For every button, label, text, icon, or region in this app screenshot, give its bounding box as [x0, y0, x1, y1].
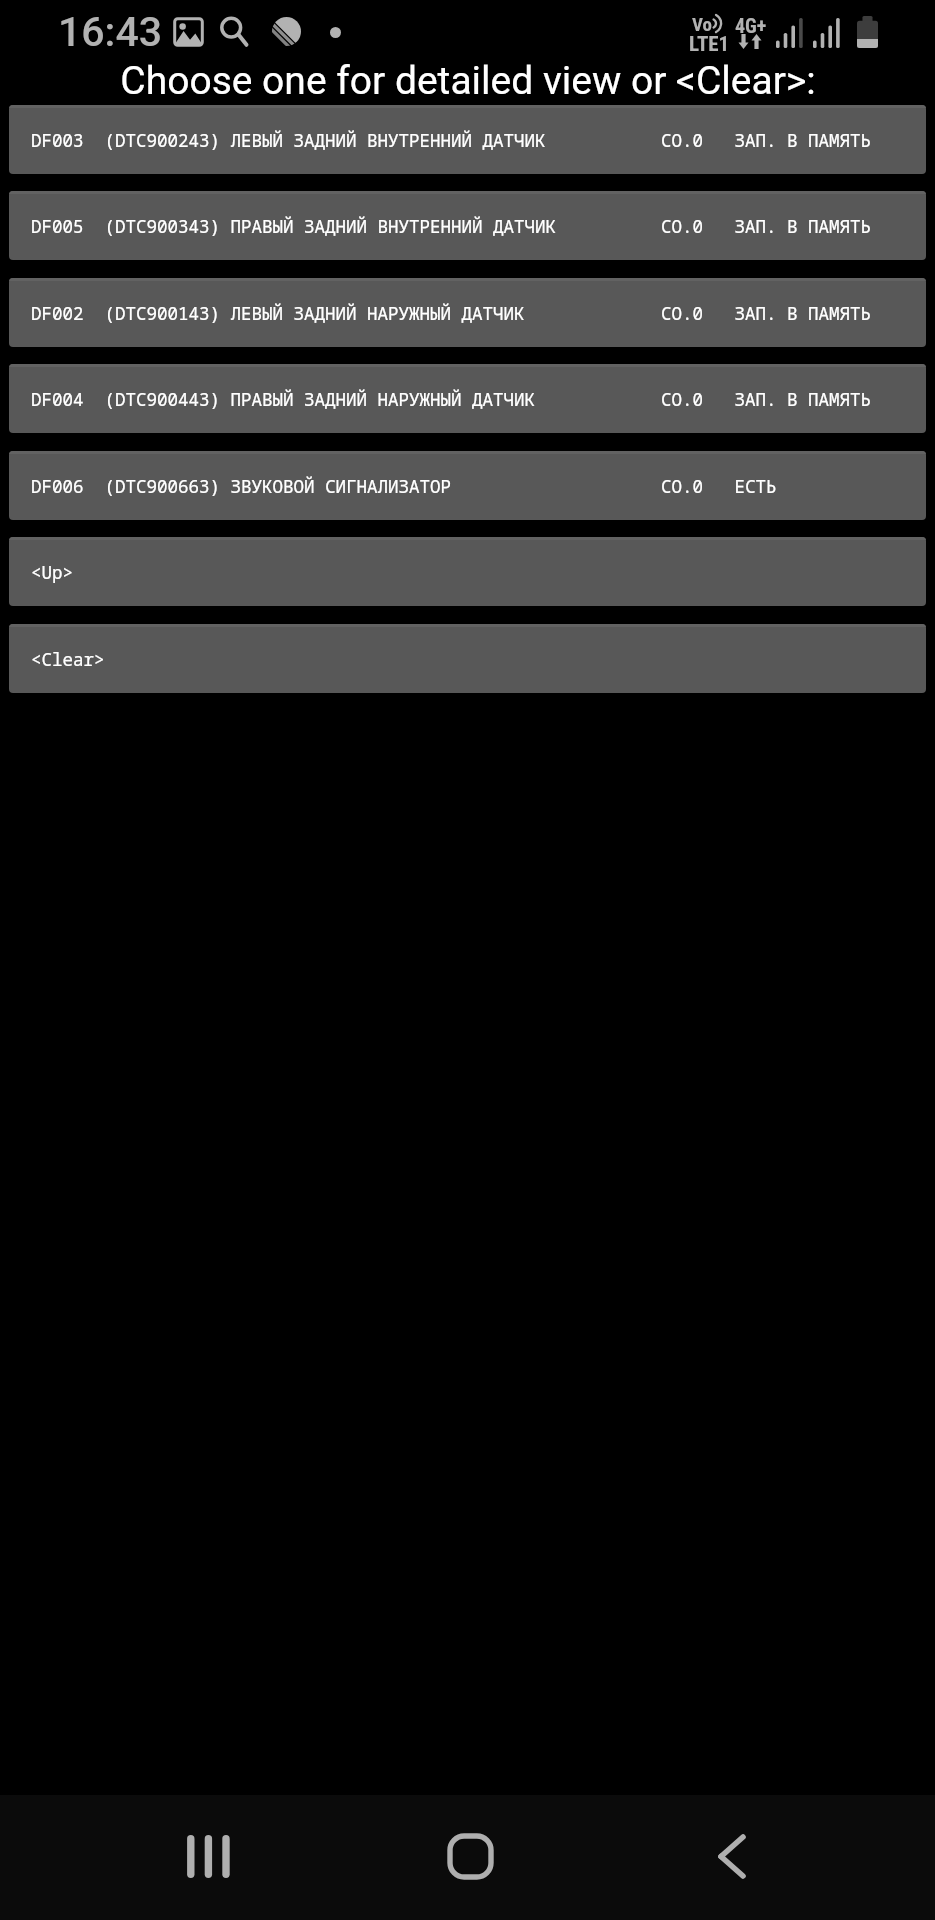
staticText: 4G+: [735, 14, 767, 37]
staticText: <Up>: [31, 560, 73, 584]
staticText: <Clear>: [31, 647, 105, 671]
button[interactable]: <Up>: [9, 537, 926, 606]
staticText: Vo: [692, 13, 713, 35]
button[interactable]: DF004 (DTC900443) ПРАВЫЙ ЗАДНИЙ НАРУЖНЫЙ…: [9, 364, 926, 433]
staticText: DF002 (DTC900143) ЛЕВЫЙ ЗАДНИЙ НАРУЖНЫЙ …: [31, 301, 871, 325]
button[interactable]: Home: [425, 1811, 515, 1901]
button[interactable]: DF006 (DTC900663) ЗВУКОВОЙ СИГНАЛИЗАТОР …: [9, 451, 926, 520]
button[interactable]: DF003 (DTC900243) ЛЕВЫЙ ЗАДНИЙ ВНУТРЕННИ…: [9, 105, 926, 174]
staticText: LTE1: [689, 32, 730, 57]
button[interactable]: Back: [687, 1811, 777, 1901]
staticText: Choose one for detailed view or <Clear>:: [120, 58, 816, 104]
staticText: DF006 (DTC900663) ЗВУКОВОЙ СИГНАЛИЗАТОР …: [31, 474, 777, 498]
staticText: 16:43: [58, 8, 163, 56]
button[interactable]: <Clear>: [9, 624, 926, 693]
staticText: DF005 (DTC900343) ПРАВЫЙ ЗАДНИЙ ВНУТРЕНН…: [31, 214, 871, 238]
staticText: DF003 (DTC900243) ЛЕВЫЙ ЗАДНИЙ ВНУТРЕННИ…: [31, 128, 871, 152]
staticText: DF004 (DTC900443) ПРАВЫЙ ЗАДНИЙ НАРУЖНЫЙ…: [31, 387, 871, 411]
button[interactable]: DF002 (DTC900143) ЛЕВЫЙ ЗАДНИЙ НАРУЖНЫЙ …: [9, 278, 926, 347]
button[interactable]: DF005 (DTC900343) ПРАВЫЙ ЗАДНИЙ ВНУТРЕНН…: [9, 191, 926, 260]
button[interactable]: Recents: [164, 1811, 254, 1901]
